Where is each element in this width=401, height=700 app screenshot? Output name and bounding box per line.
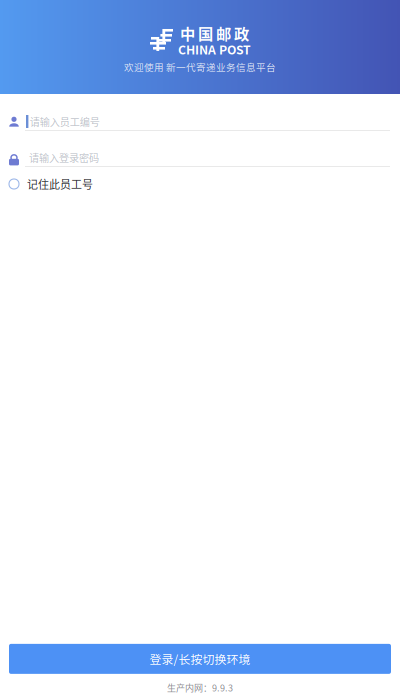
staticText: 登录/长按切换环境 [149,650,250,667]
staticText: 记住此员工号 [27,176,93,192]
staticText: CHINA POST [178,40,251,58]
button[interactable]: 记住此员工号 [0,173,400,195]
staticText: 中 国 邮 政 [180,22,249,44]
staticText: 欢迎使用 新一代寄递业务信息平台 [124,60,276,74]
button[interactable]: 登录/长按切换环境 [0,644,400,674]
staticText: 请输入员工编号 [30,114,100,129]
staticText: 生产内网：9.9.3 [167,681,233,694]
staticText: 请输入登录密码 [29,150,99,165]
